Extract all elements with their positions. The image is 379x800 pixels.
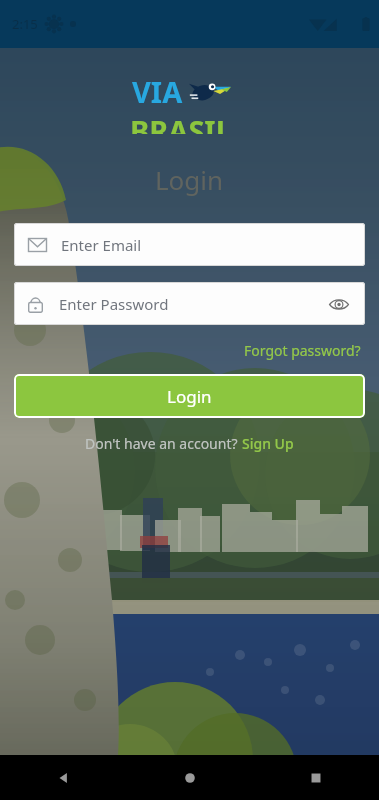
staticText: Don't have an account? <box>85 434 242 453</box>
button[interactable]: Login <box>14 374 365 418</box>
button[interactable]: Enter Password <box>14 282 365 325</box>
staticText: Sign Up <box>242 434 294 453</box>
staticText: VIA <box>132 72 183 111</box>
button[interactable]: Enter Email <box>14 223 365 266</box>
staticText: BRASIL <box>130 111 232 134</box>
button[interactable]: Recents <box>253 755 379 800</box>
button[interactable]: Home <box>127 755 253 800</box>
staticText: Enter Password <box>59 294 327 314</box>
button[interactable]: Show password <box>327 292 351 316</box>
staticText: Login <box>167 385 212 408</box>
button[interactable]: Back <box>0 755 127 800</box>
staticText: Login <box>155 162 224 197</box>
button[interactable]: Forgot password? <box>240 337 365 364</box>
staticText: Enter Email <box>61 235 142 255</box>
staticText: 2:15 <box>12 15 38 33</box>
staticText: Forgot password? <box>244 341 361 360</box>
button[interactable]: Sign Up <box>242 434 294 453</box>
